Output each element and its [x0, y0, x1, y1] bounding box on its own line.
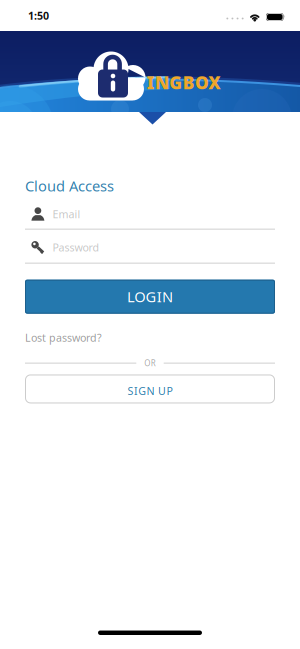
staticText: Lost password? — [25, 331, 102, 345]
staticText: INGBOX — [147, 71, 221, 94]
button[interactable]: LOGIN — [25, 280, 275, 314]
staticText: SIGN UP — [128, 384, 172, 398]
staticText: Email — [52, 207, 80, 221]
button[interactable]: SIGN UP — [25, 374, 275, 403]
staticText: LOGIN — [127, 287, 173, 306]
staticText: Password — [52, 240, 99, 254]
staticText: OR — [144, 358, 156, 368]
staticText: 1:50 — [28, 8, 49, 23]
button[interactable]: Lost password? — [25, 331, 102, 345]
staticText: Cloud Access — [25, 176, 114, 195]
